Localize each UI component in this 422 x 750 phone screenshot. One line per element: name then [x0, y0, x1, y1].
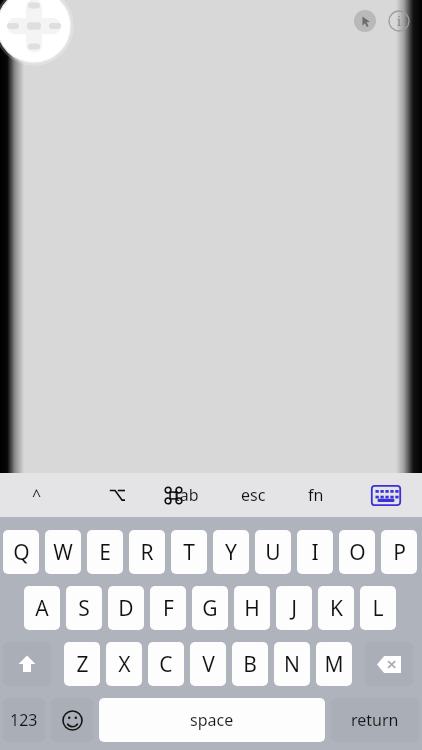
button[interactable]: M: [316, 642, 352, 686]
staticText: U: [265, 538, 281, 567]
staticText: V: [202, 650, 215, 679]
button[interactable]: I: [297, 530, 333, 574]
button[interactable]: P: [381, 530, 417, 574]
button[interactable]: esc: [227, 473, 279, 517]
staticText: H: [244, 594, 260, 623]
staticText: P: [393, 538, 406, 567]
other: Backspace: [377, 656, 401, 673]
button[interactable]: H: [234, 586, 270, 630]
button[interactable]: Q: [3, 530, 39, 574]
staticText: T: [183, 538, 195, 567]
staticText: E: [99, 538, 111, 567]
staticText: W: [53, 538, 73, 567]
button[interactable]: G: [192, 586, 228, 630]
staticText: fn: [308, 484, 324, 506]
button[interactable]: E: [87, 530, 123, 574]
button[interactable]: Media controls: [0, 0, 74, 66]
button[interactable]: Info: [388, 10, 410, 32]
staticText: S: [78, 594, 90, 623]
staticText: O: [349, 538, 366, 567]
staticText: Q: [13, 538, 30, 567]
button[interactable]: X: [106, 642, 142, 686]
button[interactable]: V: [190, 642, 226, 686]
staticText: F: [163, 594, 174, 623]
staticText: N: [284, 650, 300, 679]
staticText: G: [202, 594, 218, 623]
staticText: Y: [225, 538, 237, 567]
staticText: ^: [32, 484, 42, 506]
staticText: K: [330, 594, 343, 623]
button[interactable]: S: [66, 586, 102, 630]
staticText: 123: [10, 709, 38, 731]
button[interactable]: A: [24, 586, 60, 630]
button[interactable]: N: [274, 642, 310, 686]
button[interactable]: Y: [213, 530, 249, 574]
staticText: i: [397, 12, 402, 30]
button[interactable]: K: [318, 586, 354, 630]
button[interactable]: Shift: [3, 642, 51, 686]
button[interactable]: W: [45, 530, 81, 574]
button[interactable]: Emoji: [51, 698, 93, 742]
button[interactable]: Option: [91, 473, 143, 517]
staticText: esc: [241, 484, 266, 506]
button[interactable]: Command: [147, 473, 199, 517]
staticText: D: [118, 594, 134, 623]
button[interactable]: tab: [160, 473, 212, 517]
button[interactable]: F: [150, 586, 186, 630]
button[interactable]: T: [171, 530, 207, 574]
staticText: space: [190, 709, 234, 731]
button[interactable]: D: [108, 586, 144, 630]
button[interactable]: Hide keyboard: [360, 473, 412, 517]
other: Shift: [17, 654, 37, 674]
button[interactable]: J: [276, 586, 312, 630]
button[interactable]: R: [129, 530, 165, 574]
staticText: Z: [76, 650, 89, 679]
button[interactable]: Backspace: [365, 642, 413, 686]
button[interactable]: 123: [3, 698, 45, 742]
button[interactable]: ^: [11, 473, 63, 517]
staticText: A: [35, 594, 49, 623]
button[interactable]: return: [331, 698, 419, 742]
button[interactable]: U: [255, 530, 291, 574]
staticText: X: [118, 650, 131, 679]
button[interactable]: fn: [290, 473, 342, 517]
button[interactable]: Z: [64, 642, 100, 686]
staticText: L: [372, 594, 384, 623]
button[interactable]: C: [148, 642, 184, 686]
staticText: R: [140, 538, 154, 567]
staticText: tab: [174, 484, 199, 506]
staticText: J: [291, 594, 297, 623]
staticText: M: [324, 650, 344, 679]
staticText: B: [243, 650, 257, 679]
staticText: return: [351, 709, 399, 731]
button[interactable]: L: [360, 586, 396, 630]
staticText: I: [311, 538, 319, 567]
other: Emoji: [62, 710, 83, 731]
staticText: C: [159, 650, 173, 679]
button[interactable]: B: [232, 642, 268, 686]
button[interactable]: space: [99, 698, 325, 742]
button[interactable]: Pointer: [354, 10, 376, 32]
button[interactable]: O: [339, 530, 375, 574]
